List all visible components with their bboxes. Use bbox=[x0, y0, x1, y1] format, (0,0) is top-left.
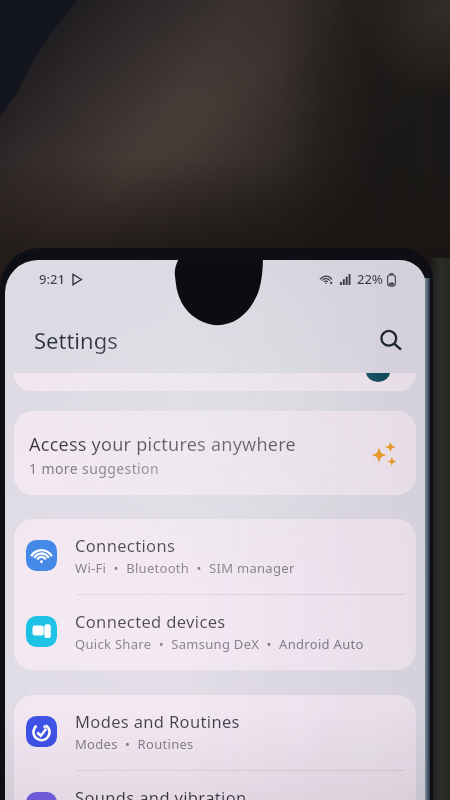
staticText: Quick Share • Samsung DeX • Android Auto bbox=[75, 635, 364, 653]
staticText: Modes • Routines bbox=[75, 735, 194, 753]
staticText: 22% bbox=[357, 270, 383, 288]
staticText: 1 more suggestion bbox=[29, 459, 160, 478]
staticText: Access your pictures anywhere bbox=[29, 432, 296, 457]
staticText: Settings bbox=[34, 325, 118, 355]
button[interactable]: Connections bbox=[14, 519, 416, 594]
staticText: Connections bbox=[75, 534, 176, 556]
staticText: Wi-Fi • Bluetooth • SIM manager bbox=[75, 559, 295, 577]
button[interactable]: Sounds and vibration bbox=[14, 771, 416, 800]
staticText: Connected devices bbox=[75, 610, 226, 632]
button[interactable]: Connected devices bbox=[14, 595, 416, 670]
button[interactable] bbox=[14, 373, 416, 391]
button[interactable]: Access your pictures anywhere bbox=[14, 411, 416, 495]
button[interactable]: Modes and Routines bbox=[14, 695, 416, 770]
staticText: Modes and Routines bbox=[75, 710, 240, 732]
staticText: Sounds and vibration bbox=[75, 786, 247, 800]
staticText: 9:21 bbox=[39, 270, 65, 288]
button[interactable]: Search bbox=[367, 316, 411, 360]
